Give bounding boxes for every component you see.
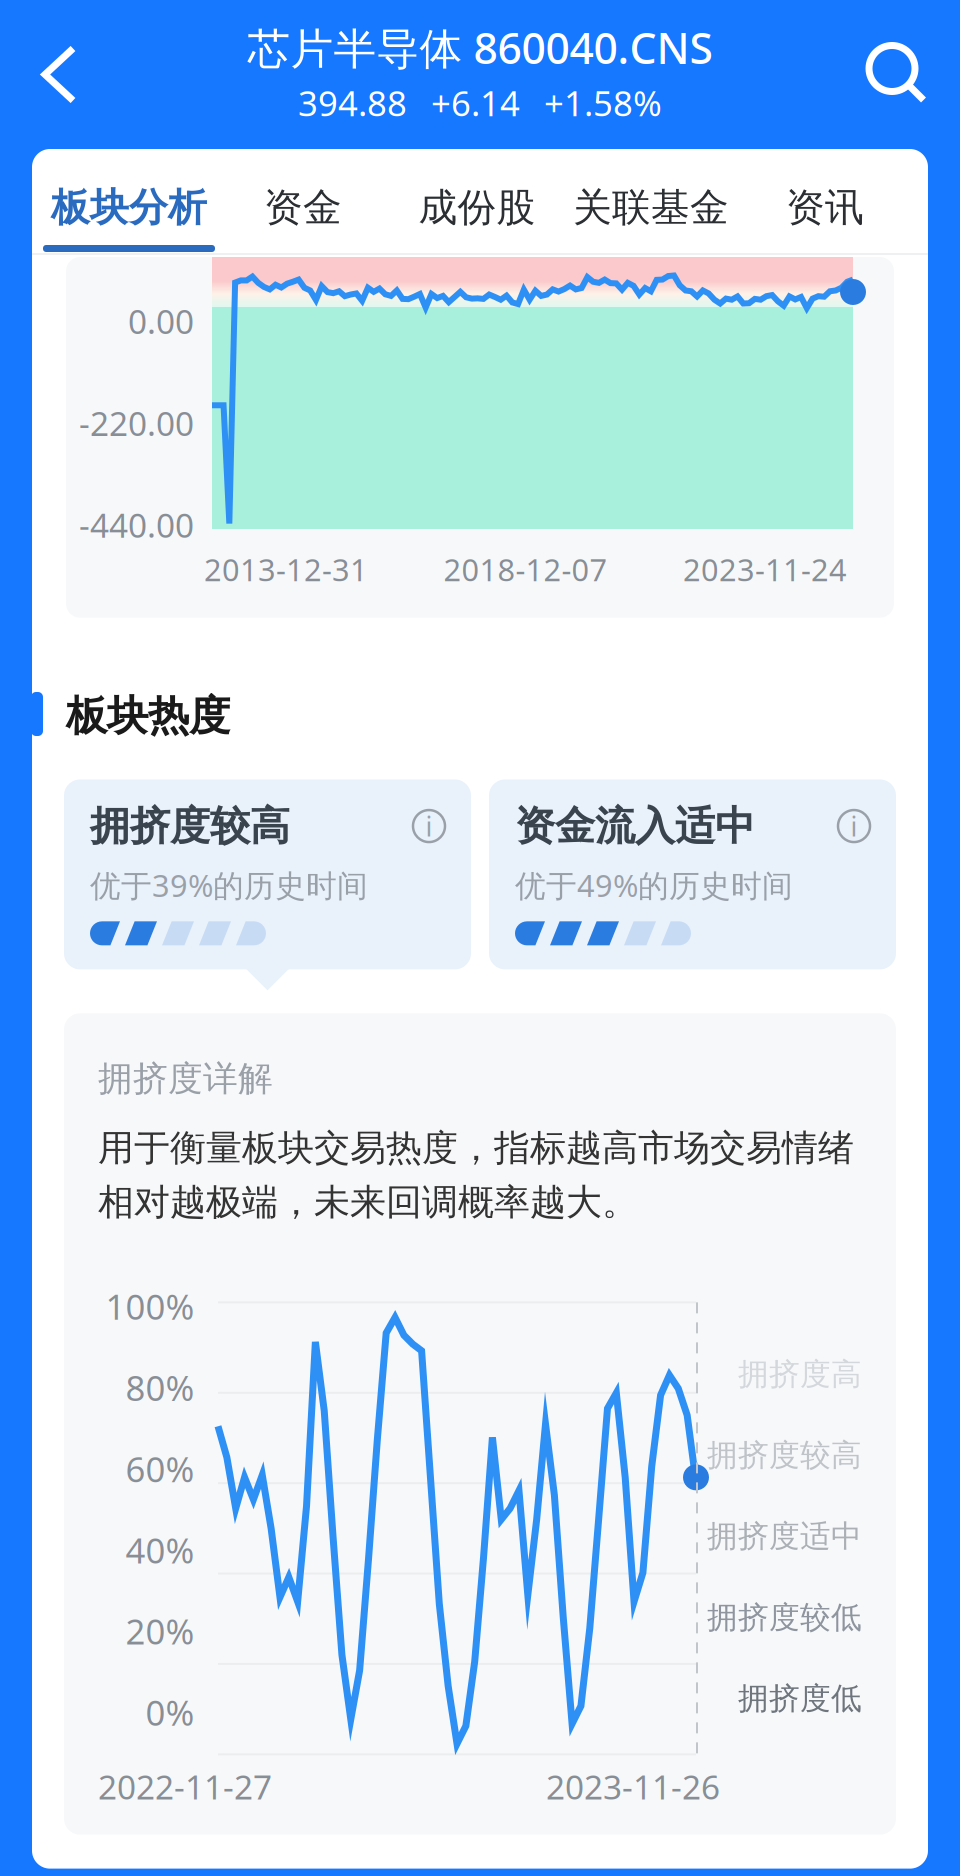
button[interactable]: 拥挤度较高 — [64, 779, 471, 969]
staticText: 拥挤度较低 — [707, 1599, 862, 1636]
staticText: 20% — [125, 1608, 194, 1654]
staticText: 优于49%的历史时间 — [515, 865, 793, 905]
staticText: 394.88 — [298, 80, 407, 126]
button[interactable]: 资金流入适中 — [489, 779, 896, 969]
staticText: +1.58% — [544, 80, 662, 126]
staticText: 资金流入适中 — [515, 801, 755, 851]
staticText: -220.00 — [79, 401, 194, 445]
staticText: 芯片半导体 860040.CNS — [247, 19, 712, 76]
button[interactable]: 成份股 — [390, 148, 564, 254]
staticText: 拥挤度低 — [738, 1680, 862, 1717]
staticText: 100% — [105, 1283, 194, 1329]
staticText: 板块分析 — [51, 184, 207, 231]
staticText: 2013-12-31 — [204, 549, 368, 590]
button[interactable]: 资讯 — [738, 148, 912, 254]
staticText: 40% — [125, 1527, 194, 1573]
staticText: 2022-11-27 — [98, 1764, 272, 1809]
staticText: +6.14 — [431, 80, 520, 126]
staticText: i — [425, 808, 432, 844]
staticText: 0% — [145, 1689, 194, 1735]
staticText: 拥挤度适中 — [707, 1517, 862, 1555]
button[interactable]: Back — [16, 31, 102, 117]
staticText: 资金 — [264, 184, 342, 231]
staticText: 优于39%的历史时间 — [90, 865, 368, 905]
staticText: 0.00 — [128, 299, 194, 343]
staticText: 60% — [125, 1446, 194, 1492]
staticText: 资讯 — [786, 184, 864, 231]
staticText: i — [850, 808, 857, 844]
staticText: 关联基金 — [573, 184, 729, 231]
button[interactable]: Search — [854, 31, 940, 117]
staticText: 2018-12-07 — [443, 549, 607, 590]
staticText: 拥挤度较高 — [707, 1436, 862, 1474]
staticText: 2023-11-24 — [683, 549, 847, 590]
button[interactable]: 关联基金 — [564, 148, 738, 254]
staticText: 成份股 — [418, 184, 535, 231]
staticText: 拥挤度较高 — [90, 801, 290, 851]
staticText: 用于衡量板块交易热度，指标越高市场交易情绪相对越极端，未来回调概率越大。 — [98, 1126, 854, 1224]
button[interactable]: 板块分析 — [42, 148, 216, 254]
staticText: 板块热度 — [66, 691, 230, 741]
staticText: 80% — [125, 1365, 194, 1411]
staticText: 拥挤度详解 — [98, 1057, 273, 1100]
staticText: 2023-11-26 — [546, 1764, 720, 1809]
staticText: -440.00 — [79, 503, 194, 547]
staticText: 拥挤度高 — [738, 1355, 862, 1393]
button[interactable]: 资金 — [216, 148, 390, 254]
